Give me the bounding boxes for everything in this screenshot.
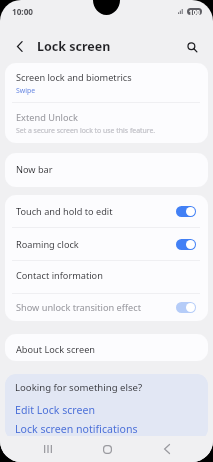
- button[interactable]: Now bar: [5, 153, 208, 187]
- button[interactable]: Roaming clock: [5, 228, 208, 260]
- button[interactable]: Screen lock and biometrics: [5, 63, 208, 102]
- button[interactable]: Home: [95, 437, 119, 461]
- staticText: About Lock screen: [16, 343, 96, 356]
- staticText: Set a secure screen lock to use this fea…: [16, 126, 156, 135]
- staticText: Swipe: [16, 86, 36, 95]
- staticText: Extend Unlock: [16, 111, 78, 124]
- staticText: Lock screen notifications: [15, 422, 138, 436]
- staticText: Show unlock transition effect: [16, 301, 176, 314]
- button[interactable]: Back: [155, 437, 179, 461]
- button[interactable]: Edit Lock screen: [5, 401, 208, 418]
- button[interactable]: Back: [0, 24, 117, 63]
- button[interactable]: Lock screen notifications: [5, 418, 208, 440]
- button[interactable]: Recent apps: [36, 437, 60, 461]
- staticText: 100: [189, 8, 200, 15]
- staticText: Edit Lock screen: [15, 403, 95, 417]
- staticText: Touch and hold to edit: [16, 205, 176, 218]
- button[interactable]: Touch and hold to edit: [5, 195, 208, 227]
- staticText: 10:00: [12, 6, 34, 17]
- button[interactable]: About Lock screen: [5, 334, 208, 361]
- button[interactable]: Contact information: [5, 261, 208, 293]
- button[interactable]: Search: [181, 36, 203, 58]
- staticText: Looking for something else?: [15, 381, 143, 394]
- staticText: Roaming clock: [16, 238, 176, 251]
- staticText: Contact information: [16, 269, 103, 282]
- other: Back: [17, 40, 23, 53]
- staticText: Screen lock and biometrics: [16, 71, 132, 84]
- button[interactable]: Show unlock transition effect: [5, 294, 208, 321]
- button[interactable]: Extend Unlock: [5, 103, 208, 143]
- staticText: Now bar: [16, 163, 53, 176]
- staticText: Lock screen: [37, 38, 111, 55]
